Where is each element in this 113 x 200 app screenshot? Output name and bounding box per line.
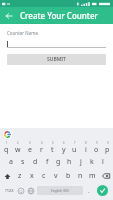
staticText: 1 bbox=[6, 141, 8, 145]
staticText: h bbox=[67, 157, 72, 167]
button[interactable]: z bbox=[14, 169, 26, 183]
staticText: 0 bbox=[107, 141, 109, 145]
staticText: l bbox=[102, 157, 104, 167]
button[interactable]: x bbox=[26, 169, 38, 183]
button[interactable]: n bbox=[74, 169, 86, 183]
staticText: e bbox=[28, 145, 32, 155]
button[interactable]: 2 bbox=[12, 141, 24, 155]
button[interactable]: c bbox=[38, 169, 50, 183]
staticText: 8 bbox=[85, 141, 87, 145]
button[interactable]: 4 bbox=[36, 141, 47, 155]
button[interactable]: SUBMIT bbox=[7, 54, 106, 65]
button[interactable]: 6 bbox=[58, 141, 69, 155]
staticText: 4 bbox=[41, 141, 43, 145]
button[interactable]: h bbox=[64, 155, 75, 169]
staticText: t bbox=[51, 145, 54, 155]
staticText: u bbox=[72, 145, 77, 155]
staticText: 3 bbox=[29, 141, 31, 145]
staticText: b bbox=[66, 171, 71, 181]
staticText: k bbox=[90, 157, 94, 167]
staticText: 2 bbox=[17, 141, 19, 145]
button[interactable]: l bbox=[97, 155, 108, 169]
staticText: q bbox=[4, 145, 9, 155]
button[interactable]: 0 bbox=[102, 141, 113, 155]
staticText: a bbox=[9, 157, 13, 167]
button[interactable]: Enter bbox=[94, 183, 111, 198]
staticText: Counter Name bbox=[7, 30, 39, 36]
button[interactable]: Google search bbox=[3, 130, 12, 139]
button[interactable]: g bbox=[53, 155, 64, 169]
button[interactable]: 3 bbox=[24, 141, 36, 155]
staticText: d bbox=[33, 157, 38, 167]
button[interactable]: Emoji bbox=[16, 183, 26, 198]
staticText: 7 bbox=[74, 141, 76, 145]
staticText: f bbox=[46, 157, 49, 167]
staticText: 6 bbox=[63, 141, 65, 145]
button[interactable] bbox=[7, 39, 106, 48]
staticText: n bbox=[78, 171, 83, 181]
staticText: p bbox=[105, 145, 110, 155]
staticText: 9 bbox=[96, 141, 98, 145]
button[interactable]: b bbox=[62, 169, 74, 183]
staticText: j bbox=[80, 157, 82, 167]
staticText: Create Your Counter bbox=[20, 10, 98, 21]
staticText: i bbox=[85, 145, 87, 155]
button[interactable]: 8 bbox=[80, 141, 91, 155]
button[interactable]: . bbox=[84, 183, 94, 198]
staticText: y bbox=[62, 145, 66, 155]
staticText: w bbox=[15, 145, 21, 155]
staticText: English (US) bbox=[51, 189, 69, 193]
button[interactable]: Backspace bbox=[98, 169, 113, 183]
button[interactable]: 1 bbox=[0, 141, 12, 155]
staticText: r bbox=[40, 145, 43, 155]
button[interactable]: d bbox=[29, 155, 41, 169]
staticText: v bbox=[54, 171, 58, 181]
button[interactable]: j bbox=[75, 155, 86, 169]
button[interactable]: Change language bbox=[26, 183, 36, 198]
button[interactable]: English (US) bbox=[37, 186, 83, 195]
button[interactable]: v bbox=[50, 169, 62, 183]
button[interactable]: f bbox=[41, 155, 53, 169]
button[interactable]: 7 bbox=[69, 141, 80, 155]
staticText: g bbox=[56, 157, 61, 167]
staticText: 5 bbox=[52, 141, 54, 145]
button[interactable]: Back bbox=[0, 7, 17, 24]
staticText: o bbox=[94, 145, 99, 155]
button[interactable]: 9 bbox=[91, 141, 102, 155]
button[interactable]: a bbox=[5, 155, 17, 169]
staticText: . bbox=[88, 187, 90, 195]
staticText: ?123 bbox=[5, 188, 14, 193]
button[interactable]: m bbox=[86, 169, 98, 183]
staticText: c bbox=[42, 171, 46, 181]
staticText: x bbox=[30, 171, 34, 181]
staticText: SUBMIT bbox=[47, 56, 66, 63]
button[interactable]: s bbox=[17, 155, 29, 169]
staticText: s bbox=[21, 157, 25, 167]
button[interactable]: Shift bbox=[0, 169, 14, 183]
button[interactable]: ?123 bbox=[2, 183, 16, 198]
button[interactable]: k bbox=[86, 155, 97, 169]
button[interactable]: 5 bbox=[47, 141, 58, 155]
staticText: m bbox=[89, 171, 96, 181]
staticText: z bbox=[18, 171, 22, 181]
